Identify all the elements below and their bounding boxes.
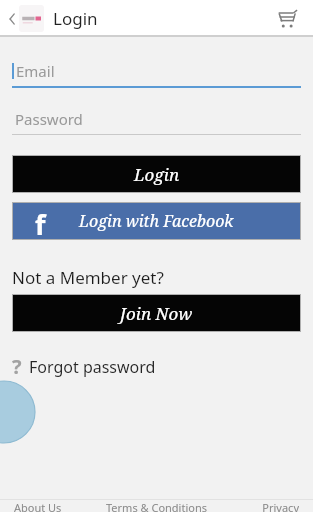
staticText: Forgot password	[29, 356, 156, 378]
staticText: ?	[12, 353, 22, 380]
staticText: Password	[15, 109, 83, 129]
staticText: Join Now	[120, 302, 193, 325]
staticText: About Us	[14, 500, 78, 512]
staticText: Login	[53, 7, 98, 30]
button[interactable]: Login with Facebook	[12, 202, 301, 240]
button[interactable]: Join Now	[12, 294, 301, 332]
staticText: Terms & Conditions	[92, 500, 221, 512]
button[interactable]: Navigate up	[6, 5, 46, 32]
button[interactable]: Login	[12, 155, 301, 193]
staticText: Privacy	[235, 500, 299, 512]
button[interactable]: Email	[12, 59, 301, 88]
staticText: Login	[134, 163, 180, 186]
staticText: Email	[16, 61, 55, 81]
button[interactable]: About Us	[0, 500, 92, 512]
button[interactable]: ?	[12, 353, 156, 380]
button[interactable]: Privacy	[221, 500, 313, 512]
staticText: Login with Facebook	[79, 210, 234, 232]
button[interactable]: Cart	[269, 2, 303, 36]
button[interactable]: Password	[12, 107, 301, 135]
button[interactable]: Terms & Conditions	[92, 500, 221, 512]
staticText: f	[35, 206, 46, 243]
staticText: Not a Member yet?	[12, 266, 164, 289]
